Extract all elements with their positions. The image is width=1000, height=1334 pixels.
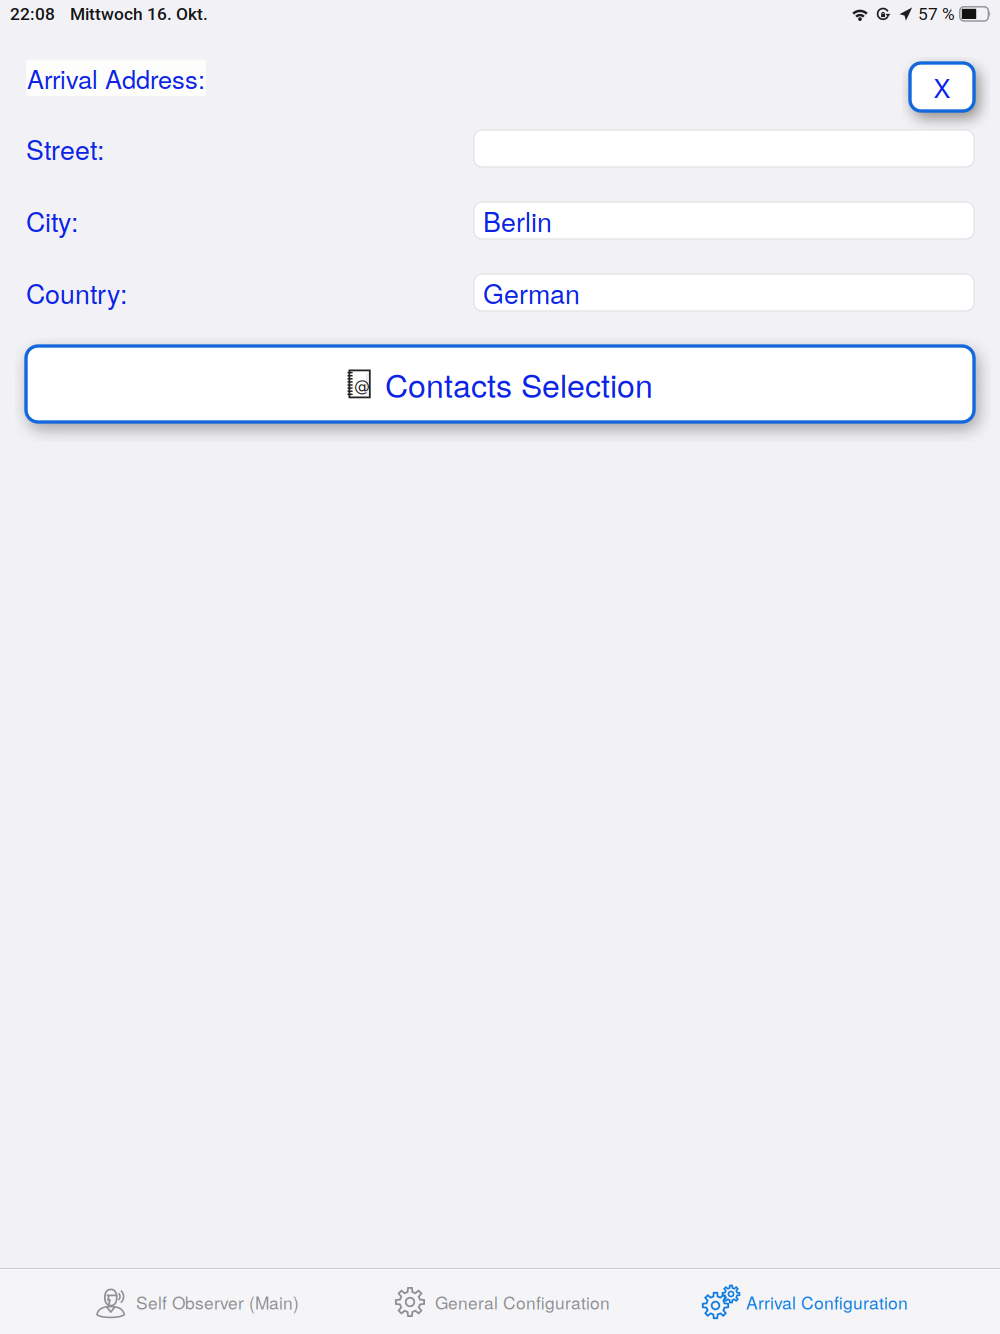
button[interactable]: Close	[910, 63, 974, 111]
button[interactable]: General Configuration	[391, 1270, 610, 1334]
staticText: 22:08	[10, 4, 55, 24]
staticText: X	[933, 69, 950, 105]
staticText: Contacts Selection	[385, 361, 653, 407]
button[interactable]: Self Observer (Main)	[92, 1270, 299, 1334]
staticText: Street:	[26, 129, 104, 168]
staticText: Mittwoch 16. Okt.	[70, 4, 208, 24]
staticText: @	[354, 376, 370, 395]
staticText: Arrival Configuration	[746, 1290, 908, 1314]
staticText: General Configuration	[435, 1290, 610, 1314]
staticText: Self Observer (Main)	[136, 1290, 299, 1314]
staticText: Arrival Address:	[27, 60, 205, 96]
staticText: City:	[26, 201, 78, 240]
staticText: German	[483, 273, 580, 312]
staticText: Berlin	[483, 201, 552, 240]
button[interactable]: Arrival Configuration	[702, 1270, 908, 1334]
staticText: 57 %	[918, 4, 955, 24]
staticText: Country:	[26, 273, 127, 312]
button[interactable]: @	[26, 346, 974, 422]
